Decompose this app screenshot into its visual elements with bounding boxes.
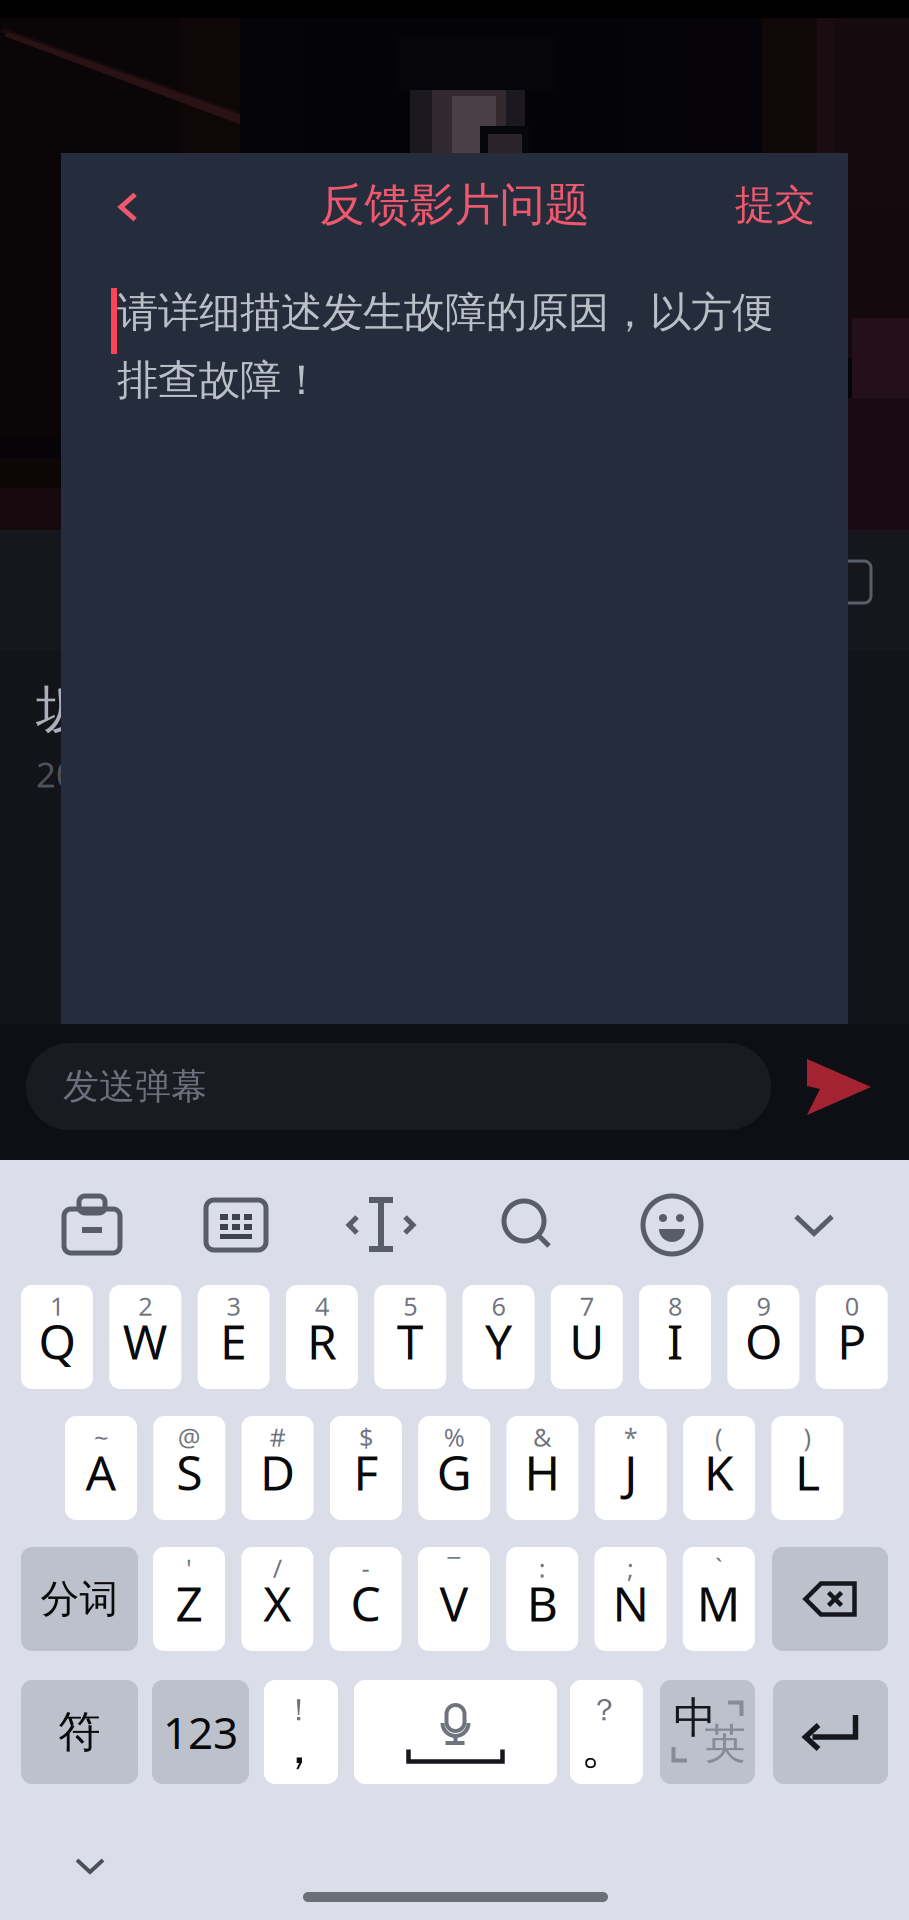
- button[interactable]: 提交: [700, 153, 850, 257]
- button[interactable]: ~: [65, 1416, 137, 1520]
- staticText: ): [803, 1420, 811, 1454]
- button[interactable]: ‾: [418, 1547, 490, 1651]
- staticText: Z: [175, 1571, 202, 1635]
- staticText: 分词: [40, 1575, 118, 1623]
- staticText: 请详细描述发生故障的原因，以方便排查故障！: [117, 287, 773, 405]
- staticText: V: [439, 1571, 468, 1635]
- staticText: O: [745, 1309, 782, 1373]
- staticText: S: [176, 1440, 202, 1504]
- staticText: 0: [845, 1289, 859, 1323]
- staticText: ？: [589, 1691, 620, 1729]
- staticText: 9: [756, 1289, 770, 1323]
- staticText: 5: [403, 1289, 417, 1323]
- staticText: $: [359, 1420, 373, 1454]
- staticText: 8: [668, 1289, 682, 1323]
- staticText: R: [307, 1309, 337, 1373]
- staticText: *: [624, 1420, 638, 1454]
- button[interactable]: Space: [354, 1680, 557, 1784]
- button[interactable]: -: [330, 1547, 402, 1651]
- staticText: I: [667, 1309, 683, 1373]
- staticText: J: [624, 1440, 637, 1504]
- staticText: M: [697, 1571, 741, 1635]
- button[interactable]: 123: [152, 1680, 249, 1784]
- staticText: U: [569, 1309, 604, 1373]
- button[interactable]: Emoji: [627, 1177, 717, 1273]
- staticText: 反馈影片问题: [319, 177, 589, 233]
- button[interactable]: Keyboard layout: [191, 1177, 281, 1273]
- button[interactable]: 0: [816, 1285, 888, 1389]
- staticText: ;: [627, 1551, 634, 1585]
- staticText: E: [220, 1309, 247, 1373]
- button[interactable]: 5: [374, 1285, 446, 1389]
- button[interactable]: ？: [570, 1680, 643, 1784]
- button[interactable]: ;: [594, 1547, 666, 1651]
- staticText: ！: [283, 1691, 314, 1729]
- button[interactable]: Switch language: [660, 1680, 755, 1784]
- button[interactable]: 7: [551, 1285, 623, 1389]
- staticText: 3: [227, 1289, 241, 1323]
- staticText: /: [273, 1551, 282, 1585]
- button[interactable]: Return: [773, 1680, 888, 1784]
- staticText: L: [795, 1440, 820, 1504]
- button[interactable]: *: [595, 1416, 667, 1520]
- button[interactable]: Send: [789, 1037, 889, 1137]
- staticText: Y: [485, 1309, 512, 1373]
- button[interactable]: #: [242, 1416, 314, 1520]
- staticText: H: [524, 1440, 560, 1504]
- button[interactable]: `: [683, 1547, 755, 1651]
- staticText: 坂道: [36, 678, 140, 742]
- staticText: C: [351, 1571, 381, 1635]
- staticText: 1: [50, 1289, 64, 1323]
- button[interactable]: &: [506, 1416, 578, 1520]
- button[interactable]: 6: [462, 1285, 534, 1389]
- staticText: `: [715, 1551, 722, 1585]
- button[interactable]: $: [330, 1416, 402, 1520]
- staticText: 。: [580, 1717, 628, 1776]
- staticText: 提交: [735, 180, 815, 229]
- staticText: -: [362, 1551, 370, 1585]
- staticText: (: [715, 1420, 723, 1454]
- staticText: A: [85, 1440, 116, 1504]
- button[interactable]: 8: [639, 1285, 711, 1389]
- staticText: ‾: [447, 1551, 460, 1585]
- button[interactable]: ': [153, 1547, 225, 1651]
- staticText: B: [527, 1571, 558, 1635]
- staticText: 符: [58, 1706, 101, 1758]
- button[interactable]: 3: [198, 1285, 270, 1389]
- staticText: 7: [580, 1289, 594, 1323]
- button[interactable]: ！: [264, 1680, 338, 1784]
- button[interactable]: 符: [21, 1680, 138, 1784]
- button[interactable]: Hide keyboard: [48, 1830, 128, 1900]
- button[interactable]: 发送弹幕: [26, 1043, 771, 1130]
- staticText: 发送弹幕: [63, 1064, 207, 1109]
- button[interactable]: Hide keyboard: [769, 1177, 859, 1273]
- staticText: K: [704, 1440, 734, 1504]
- button[interactable]: (: [683, 1416, 755, 1520]
- button[interactable]: %: [418, 1416, 490, 1520]
- staticText: #: [270, 1420, 286, 1454]
- button[interactable]: :: [506, 1547, 578, 1651]
- staticText: Q: [38, 1309, 75, 1373]
- button[interactable]: 2: [109, 1285, 181, 1389]
- button[interactable]: Clipboard: [47, 1177, 137, 1273]
- button[interactable]: ): [771, 1416, 843, 1520]
- button[interactable]: Delete: [772, 1547, 888, 1651]
- button[interactable]: Back: [74, 155, 182, 259]
- staticText: 2024: [36, 751, 116, 797]
- button[interactable]: /: [241, 1547, 313, 1651]
- staticText: T: [397, 1309, 424, 1373]
- staticText: 2: [138, 1289, 152, 1323]
- button[interactable]: 分词: [21, 1547, 138, 1651]
- staticText: @: [178, 1420, 201, 1454]
- staticText: 6: [491, 1289, 505, 1323]
- staticText: 英: [704, 1719, 745, 1769]
- button[interactable]: 1: [21, 1285, 93, 1389]
- button[interactable]: Search: [483, 1177, 573, 1273]
- button[interactable]: 4: [286, 1285, 358, 1389]
- button[interactable]: @: [153, 1416, 225, 1520]
- staticText: &: [533, 1420, 552, 1454]
- button[interactable]: Move cursor: [336, 1177, 426, 1273]
- staticText: ': [186, 1551, 192, 1585]
- button[interactable]: 9: [727, 1285, 799, 1389]
- staticText: 4: [315, 1289, 329, 1323]
